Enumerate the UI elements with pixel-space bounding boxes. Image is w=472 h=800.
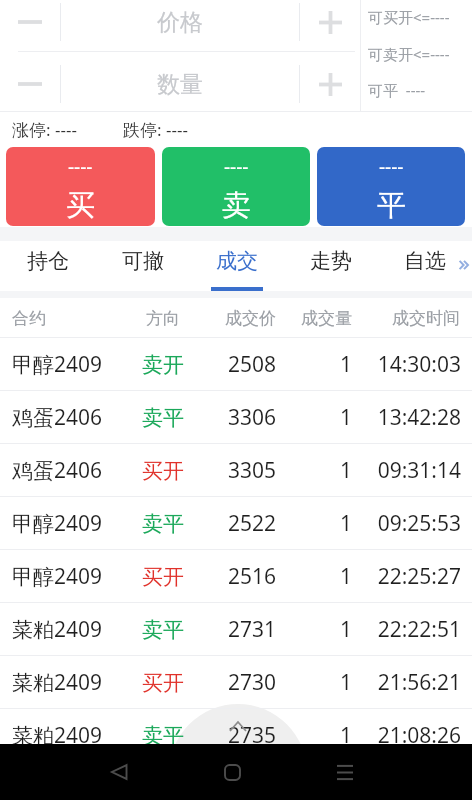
button[interactable]: ---- [162,147,310,226]
button[interactable]: 持仓 [0,241,95,291]
staticText: 2522 [189,509,276,538]
staticText: 菜粕2409 [12,615,137,644]
staticText: 卖平 [137,617,189,643]
staticText: 卖平 [137,723,189,749]
staticText: 买开 [137,670,189,696]
button[interactable]: 甲醇2409 [0,497,472,550]
button[interactable]: 甲醇2409 [0,550,472,603]
button[interactable]: ---- [6,147,155,226]
button[interactable]: 菜粕2409 [0,656,472,709]
staticText: 可买开<=---- [368,7,450,27]
staticText: 22:22:51 [352,615,461,644]
button[interactable]: 可撤 [95,241,190,291]
staticText: 09:31:14 [352,456,461,485]
staticText: 甲醇2409 [12,509,137,538]
staticText: 2731 [189,615,276,644]
staticText: 2730 [189,668,276,697]
staticText: 1 [276,509,352,538]
staticText: 可撤 [122,248,164,274]
button[interactable]: Decrease 数量 [0,62,60,106]
staticText: 涨停: ---- [12,118,77,141]
staticText: ---- [224,154,249,180]
staticText: 13:42:28 [352,403,461,432]
staticText: 1 [276,350,352,379]
button[interactable]: 甲醇2409 [0,338,472,391]
button[interactable]: Home [204,744,260,800]
button[interactable]: 鸡蛋2406 [0,444,472,497]
button[interactable]: Recent apps [317,744,373,800]
button[interactable]: Decrease 价格 [0,0,60,44]
staticText: 可平 ---- [368,80,426,100]
staticText: 平 [377,187,406,224]
staticText: 2735 [189,721,276,750]
staticText: 2508 [189,350,276,379]
staticText: 1 [276,721,352,750]
staticText: 鸡蛋2406 [12,456,137,485]
button[interactable]: 菜粕2409 [0,603,472,656]
staticText: 买开 [137,458,189,484]
button[interactable]: Increase 价格 [300,0,360,44]
staticText: 14:30:03 [352,350,461,379]
staticText: 持仓 [27,248,69,274]
staticText: 买开 [137,564,189,590]
staticText: 甲醇2409 [12,350,137,379]
staticText: 鸡蛋2406 [12,403,137,432]
staticText: 甲醇2409 [12,562,137,591]
staticText: 1 [276,403,352,432]
staticText: 自选 [404,248,446,274]
staticText: ---- [68,154,93,180]
staticText: 21:56:21 [352,668,461,697]
staticText: 3305 [189,456,276,485]
staticText: 2516 [189,562,276,591]
staticText: 1 [276,615,352,644]
staticText: 1 [276,456,352,485]
staticText: 买 [66,187,95,224]
staticText: 成交量 [276,308,352,329]
staticText: 3306 [189,403,276,432]
staticText: 卖平 [137,405,189,431]
button[interactable]: ---- [317,147,465,226]
staticText: 菜粕2409 [12,721,137,750]
button[interactable]: More tabs [456,257,472,273]
staticText: 成交时间 [352,308,460,329]
staticText: 方向 [137,308,189,329]
staticText: 卖平 [137,511,189,537]
staticText: 合约 [12,308,137,329]
button[interactable]: 走势 [284,241,378,291]
button[interactable]: 鸡蛋2406 [0,391,472,444]
staticText: 22:25:27 [352,562,461,591]
staticText: 数量 [157,70,203,99]
staticText: 价格 [157,8,203,37]
staticText: 菜粕2409 [12,668,137,697]
button[interactable]: 自选 [378,241,472,291]
button[interactable]: Back [91,744,147,800]
staticText: 09:25:53 [352,509,461,538]
staticText: 1 [276,562,352,591]
staticText: 走势 [310,248,352,274]
staticText: 卖开 [137,352,189,378]
staticText: 成交价 [189,308,276,329]
button[interactable]: Scroll to top [169,704,307,800]
staticText: 1 [276,668,352,697]
staticText: 跌停: ---- [123,118,188,141]
staticText: 可卖开<=---- [368,44,450,64]
staticText: 21:08:26 [352,721,461,750]
button[interactable]: Increase 数量 [300,62,360,106]
button[interactable]: 菜粕2409 [0,709,472,762]
staticText: 卖 [222,187,251,224]
staticText: 成交 [216,248,258,274]
staticText: ---- [379,154,404,180]
button[interactable]: 成交 [190,241,284,291]
